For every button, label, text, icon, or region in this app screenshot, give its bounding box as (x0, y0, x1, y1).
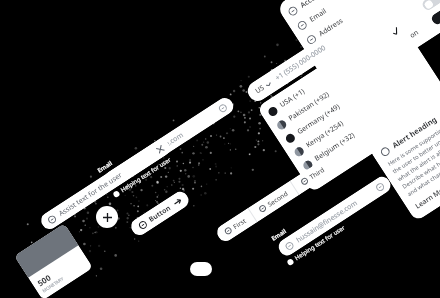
button[interactable]: Toggle on (430, 6, 440, 26)
staticText: Describe what has happened (401, 140, 440, 191)
button[interactable]: First (214, 208, 257, 244)
button[interactable]: USA (+1) (259, 19, 408, 124)
staticText: hussain@finesse.com (120, 130, 185, 177)
staticText: First (231, 216, 248, 231)
button[interactable]: Germany (+49) (276, 46, 426, 151)
button[interactable]: Button (128, 189, 192, 238)
button[interactable]: Address (297, 0, 432, 53)
button[interactable]: Badge (190, 262, 212, 276)
staticText: Button (147, 203, 173, 225)
button[interactable]: 500 (14, 223, 93, 298)
staticText: Second (266, 189, 290, 209)
button[interactable]: Pakistan (+92) (267, 33, 417, 137)
staticText: and what changed for the user. (406, 145, 440, 198)
staticText: Email (270, 227, 289, 243)
staticText: Pakistan (+92) (287, 89, 332, 123)
staticText: Email (308, 6, 329, 25)
staticText: Third (308, 165, 327, 181)
button[interactable]: Learn More (413, 175, 440, 212)
staticText: Assist text for the user (57, 170, 124, 219)
staticText: USA (+1) (278, 86, 307, 110)
button[interactable]: Tooltip (396, 106, 426, 132)
staticText: Email (96, 159, 115, 175)
staticText: MONETARY (41, 275, 64, 293)
button[interactable]: Toggle off (420, 0, 440, 12)
button[interactable]: Email (288, 0, 423, 39)
staticText: +1 (555) 000-0000 (274, 43, 328, 83)
staticText: Alert heading (390, 114, 438, 150)
button[interactable]: US (244, 0, 396, 105)
staticText: Learn More (413, 181, 440, 212)
staticText: the user to better understand (391, 125, 440, 175)
staticText: US (253, 82, 267, 96)
staticText: 500 (35, 272, 53, 289)
staticText: Belgium (+32) (313, 130, 357, 164)
button[interactable]: hussain@finesse.com (275, 174, 394, 259)
button[interactable]: Security (306, 0, 440, 67)
staticText: Biometric Authentication (345, 28, 421, 82)
staticText: Phone Authentication (335, 19, 402, 67)
staticText: Security (326, 30, 354, 53)
button[interactable]: Biometric Authentication (325, 0, 440, 96)
staticText: Helping text for user (119, 155, 173, 194)
button[interactable]: Phone Authentication (316, 0, 440, 81)
staticText: Kenya (+254) (304, 119, 346, 150)
button[interactable]: Kenya (+254) (285, 59, 434, 164)
other: Dismiss (156, 145, 164, 153)
staticText: Helping text for user (293, 223, 347, 262)
staticText: Account Information (298, 0, 364, 10)
staticText: what the alert is all about. (396, 138, 440, 183)
staticText: Germany (+49) (295, 102, 342, 137)
button[interactable]: Assist text for the user (38, 136, 173, 232)
button[interactable]: Account Information (279, 0, 414, 24)
button[interactable]: Third (290, 157, 336, 195)
staticText: hussain@finesse.com (294, 198, 359, 245)
button[interactable]: hussain@finesse.com (101, 95, 236, 191)
button[interactable]: Add (96, 206, 118, 228)
staticText: Address (317, 16, 345, 39)
staticText: Here is some supporting text for (386, 113, 440, 168)
button[interactable]: Belgium (+32) (294, 73, 440, 178)
button[interactable]: Second (248, 181, 299, 222)
